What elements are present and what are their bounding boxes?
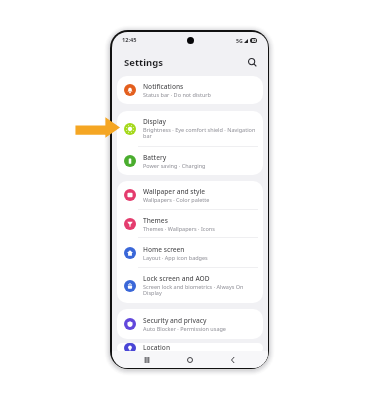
staticText: Screen lock and biometrics · Always On D… <box>143 283 260 297</box>
staticText: Location <box>143 343 171 352</box>
staticText: Themes · Wallpapers · Icons <box>143 225 215 232</box>
staticText: 82 <box>252 38 256 43</box>
staticText: Power saving · Charging <box>143 162 206 169</box>
staticText: Wallpaper and style <box>143 187 206 196</box>
button[interactable]: Security and privacy <box>117 309 263 339</box>
staticText: Lock screen and AOD <box>143 274 210 283</box>
button[interactable]: Notifications <box>117 76 263 104</box>
staticText: Security and privacy <box>143 316 207 325</box>
button[interactable]: Battery <box>117 147 263 175</box>
button[interactable]: Search <box>245 55 259 69</box>
staticText: Status bar · Do not disturb <box>143 91 212 98</box>
button[interactable]: Home <box>182 352 198 368</box>
staticText: Settings <box>124 56 163 69</box>
button[interactable]: Back <box>225 352 241 368</box>
staticText: Themes <box>143 216 168 225</box>
staticText: Battery <box>143 153 167 162</box>
button[interactable]: Wallpaper and style <box>117 181 263 209</box>
staticText: Brightness · Eye comfort shield · Naviga… <box>143 126 260 140</box>
button[interactable]: Themes <box>117 210 263 237</box>
button[interactable]: Home screen <box>117 238 263 267</box>
staticText: 12:45 <box>122 36 137 44</box>
button[interactable]: Lock screen and AOD <box>117 268 263 303</box>
button[interactable]: Display <box>117 111 263 146</box>
button[interactable]: Location <box>117 343 263 353</box>
staticText: Layout · App icon badges <box>143 254 208 261</box>
staticText: Home screen <box>143 245 185 254</box>
staticText: Wallpapers · Color palette <box>143 196 210 203</box>
staticText: Auto Blocker · Permission usage <box>143 325 226 332</box>
staticText: Display <box>143 117 166 126</box>
button[interactable]: Recents <box>139 352 155 368</box>
staticText: 5G <box>236 37 243 44</box>
staticText: Notifications <box>143 82 184 91</box>
